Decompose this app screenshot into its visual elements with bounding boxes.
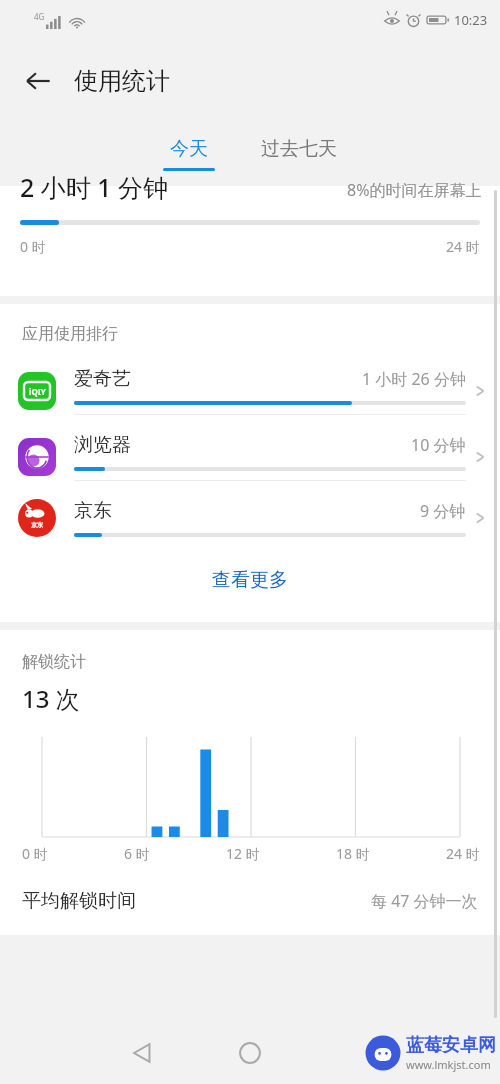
staticText: 24 时 [446, 844, 480, 863]
staticText: www.lmkjst.com [406, 1057, 491, 1072]
button[interactable]: Back [14, 57, 62, 105]
staticText: 京东 [74, 499, 112, 523]
staticText: 13 次 [22, 682, 80, 715]
staticText: 18 时 [336, 844, 370, 863]
button[interactable]: 浏览器 [0, 424, 500, 490]
staticText: iQIY [29, 386, 46, 397]
staticText: 4G [34, 11, 45, 22]
staticText: 12 时 [226, 844, 260, 863]
staticText: 每 47 分钟一次 [371, 890, 478, 912]
staticText: 使用统计 [74, 66, 170, 96]
staticText: 1 小时 26 分钟 [362, 368, 466, 390]
button[interactable]: 平均解锁时间 [0, 889, 500, 913]
staticText: 应用使用排行 [22, 324, 118, 344]
button[interactable]: iQIY [0, 358, 500, 424]
staticText: 浏览器 [74, 433, 131, 457]
button[interactable]: Back [118, 1029, 166, 1077]
staticText: 查看更多 [212, 568, 288, 592]
button[interactable]: 京东 [0, 490, 500, 546]
staticText: 9 分钟 [420, 500, 466, 522]
staticText: 6 时 [124, 844, 150, 863]
staticText: 今天 [170, 137, 208, 161]
staticText: 10 分钟 [411, 434, 466, 456]
button[interactable]: 查看更多 [186, 560, 314, 600]
staticText: 蓝莓安卓网 [406, 1034, 496, 1057]
staticText: 8%的时间在屏幕上 [347, 179, 482, 201]
button[interactable]: Home [226, 1029, 274, 1077]
button[interactable]: 今天 [149, 131, 229, 177]
staticText: 京东 [31, 521, 43, 529]
staticText: 平均解锁时间 [22, 889, 136, 913]
staticText: 10:23 [454, 11, 488, 29]
staticText: 爱奇艺 [74, 367, 131, 391]
staticText: 解锁统计 [22, 652, 86, 672]
staticText: 0 时 [22, 844, 48, 863]
staticText: 24 时 [446, 237, 480, 256]
staticText: 过去七天 [261, 137, 337, 161]
button[interactable]: 过去七天 [247, 131, 351, 177]
staticText: 0 时 [20, 237, 46, 256]
staticText: 2 小时 1 分钟 [20, 170, 169, 204]
